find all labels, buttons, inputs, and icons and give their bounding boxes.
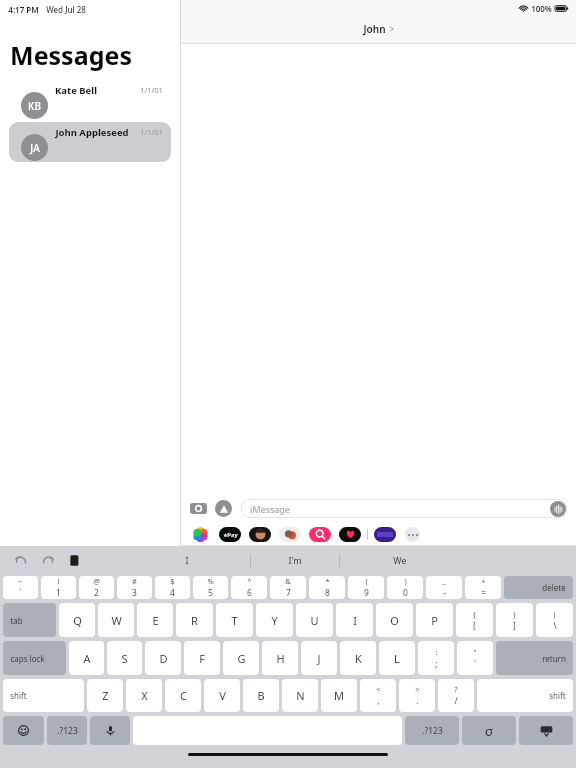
button[interactable]: * bbox=[309, 576, 345, 599]
button[interactable]: iMessage bbox=[241, 499, 567, 518]
button[interactable]: % bbox=[193, 576, 228, 599]
button[interactable]: > bbox=[399, 679, 435, 712]
button[interactable]: ^ bbox=[231, 576, 267, 599]
staticText: } bbox=[513, 609, 516, 619]
button[interactable]: E bbox=[137, 603, 173, 637]
staticText: W bbox=[111, 613, 122, 628]
button[interactable]: V bbox=[204, 679, 240, 712]
staticText: 100% bbox=[531, 3, 552, 14]
button[interactable]: tab bbox=[3, 603, 56, 637]
staticText: F bbox=[199, 651, 205, 666]
button[interactable]: Dictate bbox=[90, 716, 130, 745]
staticText: ' bbox=[474, 658, 476, 670]
button[interactable]: Y bbox=[256, 603, 293, 637]
staticText: N bbox=[296, 688, 305, 703]
staticText: 4:17 PM bbox=[8, 4, 39, 15]
staticText: ( bbox=[365, 576, 368, 586]
staticText: ^ bbox=[247, 576, 252, 586]
button[interactable]: & bbox=[270, 576, 306, 599]
button[interactable]: Digital Touch bbox=[339, 527, 361, 542]
staticText: & bbox=[285, 576, 291, 586]
staticText: Pay bbox=[223, 531, 238, 539]
button[interactable]: Audio message bbox=[550, 501, 566, 517]
button[interactable]: I bbox=[124, 546, 250, 574]
button[interactable]: R bbox=[176, 603, 213, 637]
button[interactable]: Q bbox=[59, 603, 95, 637]
button[interactable]: B bbox=[243, 679, 279, 712]
button[interactable]: .?123 bbox=[405, 716, 459, 745]
button[interactable]: Handwriting bbox=[462, 716, 516, 745]
button[interactable]: D bbox=[145, 641, 181, 675]
staticText: \ bbox=[553, 620, 557, 632]
button[interactable]: + bbox=[465, 576, 501, 599]
button[interactable]: A bbox=[69, 641, 104, 675]
button[interactable]: Paste bbox=[68, 554, 81, 567]
button[interactable]: T bbox=[216, 603, 253, 637]
button[interactable]: J bbox=[301, 641, 337, 675]
button[interactable]: @ bbox=[79, 576, 114, 599]
button[interactable]: shift bbox=[3, 679, 84, 712]
button[interactable]: " bbox=[457, 641, 493, 675]
button[interactable]: delete bbox=[504, 576, 573, 599]
button[interactable]: ) bbox=[387, 576, 423, 599]
button[interactable]: H bbox=[262, 641, 298, 675]
button[interactable]: } bbox=[496, 603, 533, 637]
button[interactable]: Z bbox=[87, 679, 123, 712]
button[interactable]: U bbox=[296, 603, 333, 637]
button[interactable]: App Store bbox=[215, 500, 232, 517]
button[interactable]: .?123 bbox=[47, 716, 87, 745]
button[interactable]: O bbox=[376, 603, 413, 637]
button[interactable]: Redo bbox=[41, 553, 55, 567]
button[interactable]: App bbox=[374, 527, 396, 542]
button[interactable]: X bbox=[126, 679, 162, 712]
button[interactable]: N bbox=[282, 679, 318, 712]
button[interactable]: L bbox=[379, 641, 415, 675]
button[interactable]: I bbox=[336, 603, 373, 637]
button[interactable]: : bbox=[418, 641, 454, 675]
button[interactable]: KB bbox=[9, 80, 171, 120]
button[interactable]: Apple Pay bbox=[219, 527, 241, 542]
staticText: ` bbox=[19, 587, 22, 599]
button[interactable]: | bbox=[536, 603, 573, 637]
staticText: " bbox=[473, 647, 477, 657]
button[interactable]: Memoji bbox=[249, 527, 271, 542]
button[interactable]: { bbox=[456, 603, 493, 637]
staticText: K bbox=[355, 651, 362, 666]
button[interactable]: More apps bbox=[405, 527, 420, 542]
button[interactable]: Emoji bbox=[3, 716, 44, 745]
button[interactable]: John bbox=[363, 22, 395, 36]
staticText: < bbox=[376, 684, 381, 694]
button[interactable]: F bbox=[184, 641, 220, 675]
button[interactable]: ! bbox=[41, 576, 76, 599]
button[interactable]: S bbox=[107, 641, 142, 675]
button[interactable]: JA bbox=[9, 122, 171, 162]
button[interactable]: # bbox=[117, 576, 152, 599]
button[interactable]: Undo bbox=[14, 553, 28, 567]
button[interactable]: Photos bbox=[193, 527, 208, 542]
button[interactable]: caps lock bbox=[3, 641, 66, 675]
staticText: shift bbox=[10, 690, 27, 701]
staticText: 1 bbox=[56, 587, 61, 599]
button[interactable]: M bbox=[321, 679, 357, 712]
staticText: 7 bbox=[286, 587, 291, 599]
button[interactable]: I'm bbox=[251, 546, 339, 574]
button[interactable]: _ bbox=[426, 576, 462, 599]
button[interactable]: Hide keyboard bbox=[519, 716, 573, 745]
button[interactable]: C bbox=[165, 679, 201, 712]
button[interactable]: ? bbox=[438, 679, 474, 712]
button[interactable]: W bbox=[98, 603, 134, 637]
button[interactable]: $ bbox=[155, 576, 190, 599]
button[interactable]: Image search bbox=[309, 527, 331, 542]
button[interactable]: ( bbox=[348, 576, 384, 599]
button[interactable]: K bbox=[340, 641, 376, 675]
button[interactable]: ~ bbox=[3, 576, 38, 599]
button[interactable]: Camera bbox=[190, 500, 207, 517]
button[interactable]: return bbox=[496, 641, 573, 675]
button[interactable]: < bbox=[360, 679, 396, 712]
button[interactable]: shift bbox=[477, 679, 573, 712]
button[interactable]: Stickers bbox=[279, 527, 301, 542]
button[interactable]: G bbox=[223, 641, 259, 675]
button[interactable]: P bbox=[416, 603, 453, 637]
button[interactable]: We bbox=[340, 546, 460, 574]
